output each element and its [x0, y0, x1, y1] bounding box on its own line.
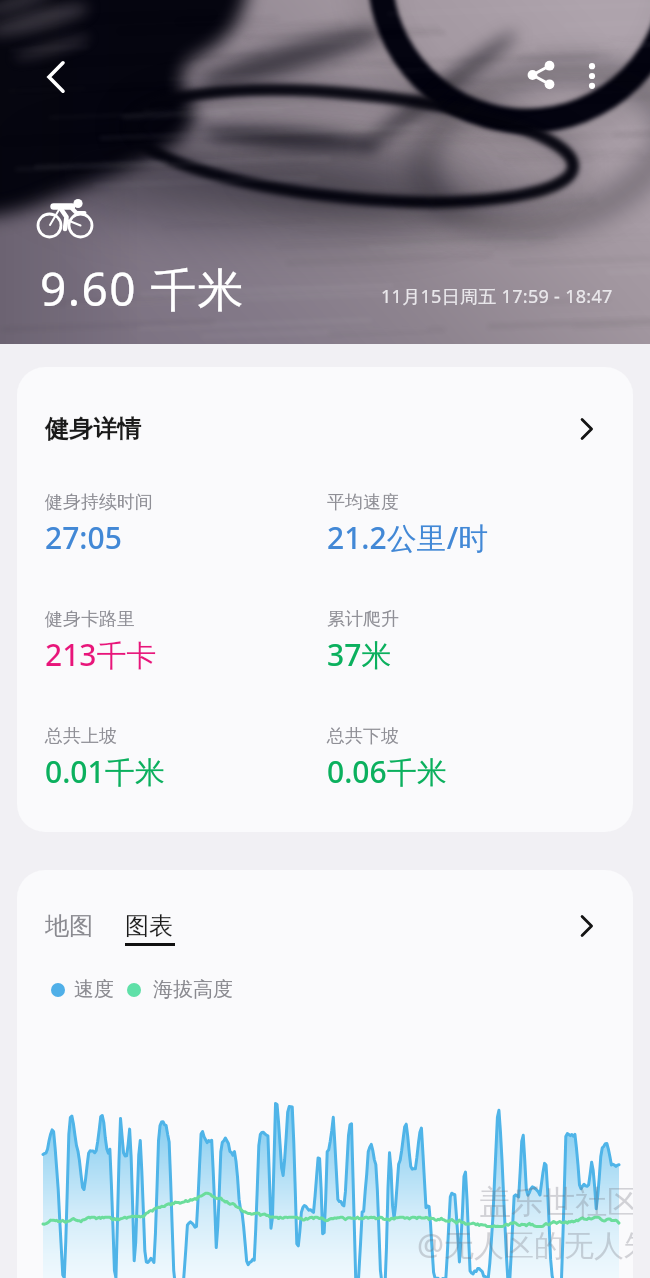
staticText: 盖乐世社区 [479, 1182, 633, 1222]
button[interactable]: Back [32, 53, 80, 101]
staticText: 速度 [74, 977, 114, 1002]
staticText: 9.60 千米 [40, 257, 246, 320]
button[interactable]: 健身详情 [17, 367, 633, 832]
button[interactable]: 图表 [125, 911, 175, 946]
staticText: 健身卡路里 [45, 608, 135, 631]
staticText: 总共下坡 [327, 725, 399, 748]
staticText: @无人区的无人朱 [417, 1224, 633, 1265]
button[interactable]: Share [517, 51, 565, 99]
staticText: 健身详情 [45, 414, 141, 444]
staticText: 11月15日周五 17:59 - 18:47 [381, 284, 613, 309]
staticText: 0.01千米 [45, 751, 165, 792]
staticText: 0.06千米 [327, 751, 447, 792]
staticText: 27:05 [45, 517, 122, 558]
staticText: 213千卡 [45, 634, 157, 675]
button[interactable]: More options [568, 52, 616, 100]
staticText: 平均速度 [327, 491, 399, 514]
staticText: 健身持续时间 [45, 491, 153, 514]
button[interactable]: 地图 [45, 911, 93, 941]
staticText: 21.2公里/时 [327, 517, 489, 558]
button[interactable]: Open chart details [574, 913, 600, 939]
staticText: 37米 [327, 634, 392, 675]
staticText: 海拔高度 [153, 977, 233, 1002]
staticText: 图表 [125, 911, 173, 941]
staticText: 累计爬升 [327, 608, 399, 631]
staticText: 总共上坡 [45, 725, 117, 748]
